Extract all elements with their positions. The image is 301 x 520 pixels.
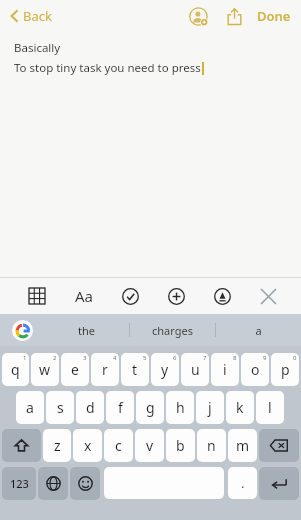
button[interactable]: d [76,391,104,424]
staticText: r [102,360,108,379]
button[interactable]: Table [22,281,52,311]
staticText: i [223,360,227,379]
staticText: p [281,360,290,379]
staticText: 0 [293,354,297,362]
button[interactable]: p [271,353,299,386]
button[interactable]: o [241,353,269,386]
button[interactable]: Done [253,3,295,29]
button[interactable]: . [228,467,257,499]
button[interactable]: l [256,391,284,424]
button[interactable]: the [44,314,129,346]
button[interactable]: t [121,353,149,386]
button[interactable]: Text format [69,281,99,311]
button[interactable]: Checklist [115,281,145,311]
button[interactable]: y [151,353,179,386]
button[interactable]: Enter [259,467,299,500]
staticText: j [208,398,212,417]
button[interactable]: z [43,429,71,462]
button[interactable]: h [166,391,194,424]
button[interactable]: m [228,429,257,462]
staticText: e [71,360,79,379]
button[interactable]: i [211,353,239,386]
staticText: y [161,360,169,379]
button[interactable]: b [166,429,195,462]
button[interactable]: Space [104,467,224,499]
button[interactable]: w [31,353,59,386]
staticText: a [26,398,34,417]
button[interactable]: s [46,391,74,424]
button[interactable]: Emoji [70,467,100,500]
staticText: 1 [23,354,27,362]
button[interactable]: n [197,429,226,462]
staticText: n [207,436,216,455]
button[interactable]: r [91,353,119,386]
button[interactable]: Google [0,314,44,346]
button[interactable]: u [181,353,209,386]
staticText: k [236,398,244,417]
button[interactable]: a [216,314,301,346]
button[interactable]: Change language [38,467,68,500]
staticText: f [118,398,123,417]
staticText: the [78,323,95,338]
staticText: a [255,323,262,338]
staticText: q [11,360,20,379]
staticText: u [191,360,200,379]
staticText: 3 [83,354,87,362]
staticText: t [132,360,138,379]
button[interactable]: Markup [207,281,237,311]
staticText: z [54,436,61,455]
button[interactable]: c [104,429,133,462]
staticText: b [176,436,185,455]
button[interactable]: Add attachment [161,281,191,311]
staticText: 4 [113,354,117,362]
staticText: o [251,360,260,379]
staticText: v [146,436,154,455]
button[interactable]: Backspace [259,429,299,462]
staticText: Done [257,7,291,25]
staticText: 6 [173,354,177,362]
button[interactable]: Numbers [2,467,36,500]
staticText: 5 [143,354,147,362]
staticText: 8 [233,354,237,362]
staticText: 7 [203,354,207,362]
button[interactable]: f [106,391,134,424]
staticText: Back [23,7,52,25]
staticText: c [115,436,122,455]
button[interactable]: Share [221,3,247,29]
staticText: d [86,398,95,417]
button[interactable]: v [135,429,164,462]
staticText: g [146,398,155,417]
button[interactable]: Back [6,3,55,29]
staticText: x [84,436,92,455]
staticText: Aa [75,286,94,306]
button[interactable]: Shift [2,429,41,462]
staticText: 9 [263,354,267,362]
staticText: 2 [53,354,57,362]
staticText: w [39,360,51,379]
staticText: To stop tiny task you need to press [14,60,201,76]
staticText: s [57,398,64,417]
button[interactable]: charges [130,314,215,346]
button[interactable]: k [226,391,254,424]
button[interactable]: x [73,429,102,462]
button[interactable]: e [61,353,89,386]
staticText: Basically [14,40,61,56]
staticText: m [236,436,250,455]
button[interactable]: g [136,391,164,424]
button[interactable]: Add people [185,3,211,29]
button[interactable]: j [196,391,224,424]
staticText: 123 [10,476,29,491]
staticText: charges [152,323,193,338]
button[interactable]: Close keyboard [253,281,283,311]
staticText: l [268,398,272,417]
staticText: . [241,474,245,492]
button[interactable]: q [2,353,29,386]
staticText: h [176,398,185,417]
button[interactable]: a [16,391,44,424]
